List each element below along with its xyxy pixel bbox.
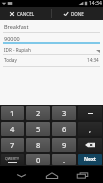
button[interactable]: IDR - Rupiah	[0, 44, 103, 55]
button[interactable]: .	[52, 154, 76, 165]
button[interactable]: Breakfast	[0, 21, 103, 32]
staticText: IDR - Rupiah	[4, 47, 31, 53]
staticText: QWERTY	[5, 156, 20, 161]
staticText: 3	[62, 108, 67, 118]
button[interactable]: Backspace	[78, 138, 102, 152]
staticText: CANCEL	[17, 11, 35, 17]
staticText: 0	[36, 155, 41, 165]
button[interactable]: QWERTY	[1, 154, 24, 165]
staticText: 7	[10, 140, 15, 150]
staticText: .	[63, 155, 66, 165]
button[interactable]: 2	[26, 106, 50, 120]
staticText: 1	[10, 108, 15, 118]
staticText: Breakfast	[4, 23, 29, 30]
button[interactable]: 3	[52, 106, 76, 120]
staticText: 4	[10, 124, 15, 134]
button[interactable]: Next	[78, 154, 102, 165]
staticText: 5	[36, 124, 41, 134]
button[interactable]: 90000	[0, 33, 103, 44]
other: Backspace	[85, 142, 95, 148]
button[interactable]: CANCEL	[0, 7, 51, 20]
staticText: 14:34	[87, 57, 99, 63]
staticText: Next	[84, 156, 97, 163]
button[interactable]: 0	[26, 154, 50, 165]
button[interactable]: 14:34	[87, 57, 99, 63]
staticText: Today	[4, 57, 17, 63]
staticText: 14:34	[89, 0, 102, 7]
staticText: 9	[62, 140, 67, 150]
button[interactable]: Back	[9, 168, 33, 182]
button[interactable]: 8	[26, 138, 50, 152]
button[interactable]: Recents	[70, 168, 94, 182]
button[interactable]: 4	[1, 122, 24, 136]
button[interactable]: 7	[1, 138, 24, 152]
staticText: 6	[62, 124, 67, 134]
staticText: ,	[89, 124, 92, 134]
button[interactable]: Home	[40, 168, 64, 182]
button[interactable]: ,	[78, 122, 102, 136]
staticText: DONE	[71, 11, 84, 17]
staticText: 2	[36, 108, 41, 118]
button[interactable]: 1	[1, 106, 24, 120]
staticText: 8	[36, 140, 41, 150]
button[interactable]: Today	[4, 57, 17, 63]
staticText: 90000	[4, 35, 20, 42]
button[interactable]: 5	[26, 122, 50, 136]
button[interactable]: 6	[52, 122, 76, 136]
button[interactable]	[78, 106, 102, 120]
button[interactable]: 9	[52, 138, 76, 152]
button[interactable]: DONE	[52, 7, 103, 20]
